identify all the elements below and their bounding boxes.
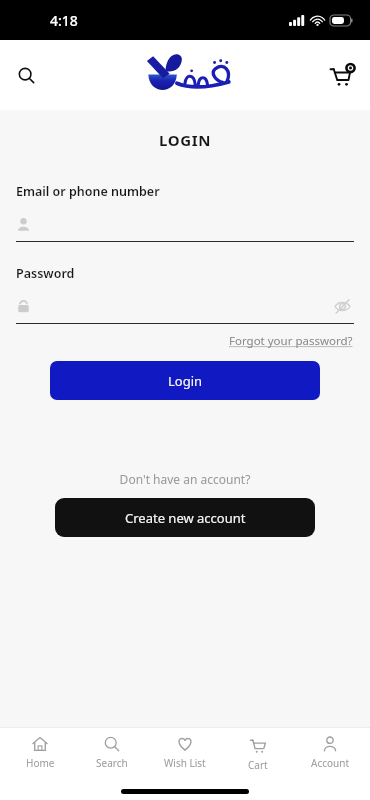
button[interactable]: Account [297, 728, 363, 778]
staticText: Create new account [125, 509, 246, 527]
button[interactable]: Cart, 0 items [325, 58, 359, 92]
button[interactable]: Login [50, 361, 320, 400]
button[interactable]: Forgot your password? [227, 331, 355, 351]
button[interactable]: Search [79, 728, 145, 778]
button[interactable]: Show password [330, 295, 354, 317]
button[interactable]: Search [11, 60, 41, 90]
staticText: Search [96, 756, 128, 770]
staticText: Wish List [164, 756, 206, 770]
staticText: LOGIN [0, 130, 370, 150]
staticText: Cart [248, 758, 268, 772]
staticText: Email or phone number [16, 183, 160, 200]
staticText: Login [168, 372, 203, 390]
staticText: Forgot your password? [229, 333, 353, 349]
staticText: 4:18 [50, 11, 78, 30]
button[interactable]: Cart [225, 728, 291, 778]
button[interactable]: Home [7, 728, 73, 778]
staticText: Account [311, 756, 350, 770]
staticText: Password [16, 265, 75, 282]
button[interactable]: Create new account [55, 498, 315, 537]
staticText: Don't have an account? [0, 471, 370, 487]
staticText: Home [26, 756, 55, 770]
button[interactable]: Wish List [152, 728, 218, 778]
